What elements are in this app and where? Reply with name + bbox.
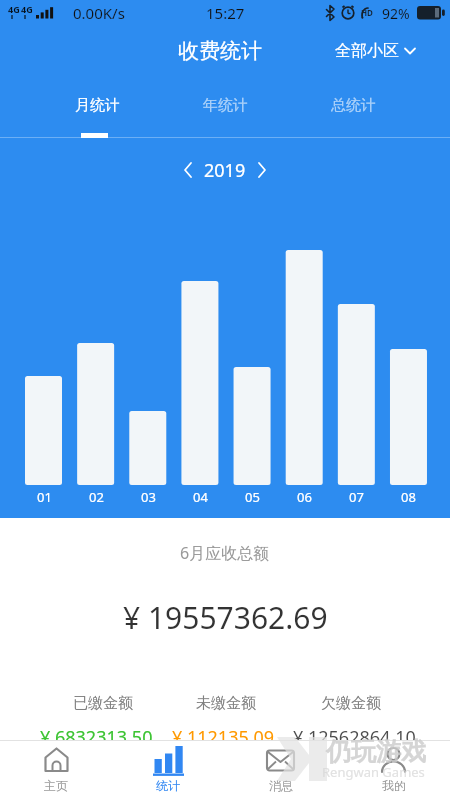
- staticText: 04: [193, 488, 208, 506]
- staticText: 02: [89, 488, 104, 506]
- button[interactable]: 月统计: [0, 80, 227, 130]
- staticText: ¥ 19557362.69: [123, 597, 328, 638]
- button[interactable]: 主页: [0, 741, 112, 800]
- staticText: 年统计: [203, 96, 248, 115]
- button[interactable]: 总统计: [223, 80, 450, 130]
- staticText: ¥ 112135.09: [172, 725, 275, 750]
- staticText: 03: [141, 488, 156, 506]
- staticText: ¥ 12562864.10: [293, 725, 416, 750]
- button[interactable]: [257, 162, 267, 178]
- button[interactable]: [183, 162, 193, 178]
- staticText: ¥ 6832313.50: [40, 725, 153, 750]
- button[interactable]: 全部小区: [320, 33, 430, 69]
- staticText: 07: [349, 488, 364, 506]
- staticText: 月统计: [75, 96, 120, 115]
- button[interactable]: 年统计: [95, 80, 355, 130]
- staticText: 欠缴金额: [321, 694, 381, 713]
- staticText: 已缴金额: [73, 694, 133, 713]
- staticText: 15:27: [206, 3, 245, 23]
- staticText: 0.00K/s: [73, 3, 125, 23]
- staticText: 仍玩游戏: [326, 736, 426, 767]
- staticText: 06: [297, 488, 312, 506]
- staticText: 统计: [156, 778, 180, 793]
- staticText: 4G: [8, 3, 20, 15]
- staticText: 2019: [204, 158, 246, 183]
- staticText: HD: [361, 7, 373, 18]
- staticText: 我的: [382, 778, 406, 793]
- button[interactable]: 消息: [224, 741, 337, 800]
- staticText: 4G: [21, 3, 33, 15]
- staticText: 消息: [269, 778, 293, 793]
- staticText: 总统计: [331, 96, 376, 115]
- staticText: Rengwan Games: [322, 763, 425, 781]
- staticText: 主页: [44, 778, 68, 793]
- staticText: 全部小区: [335, 41, 399, 61]
- staticText: 收费统计: [178, 38, 262, 64]
- staticText: 92%: [382, 4, 410, 23]
- staticText: 08: [401, 488, 416, 506]
- button[interactable]: 我的: [337, 741, 450, 800]
- staticText: 05: [245, 488, 260, 506]
- staticText: 6月应收总额: [180, 542, 270, 564]
- staticText: 01: [37, 488, 52, 506]
- button[interactable]: 统计: [112, 741, 224, 800]
- staticText: 未缴金额: [196, 694, 256, 713]
